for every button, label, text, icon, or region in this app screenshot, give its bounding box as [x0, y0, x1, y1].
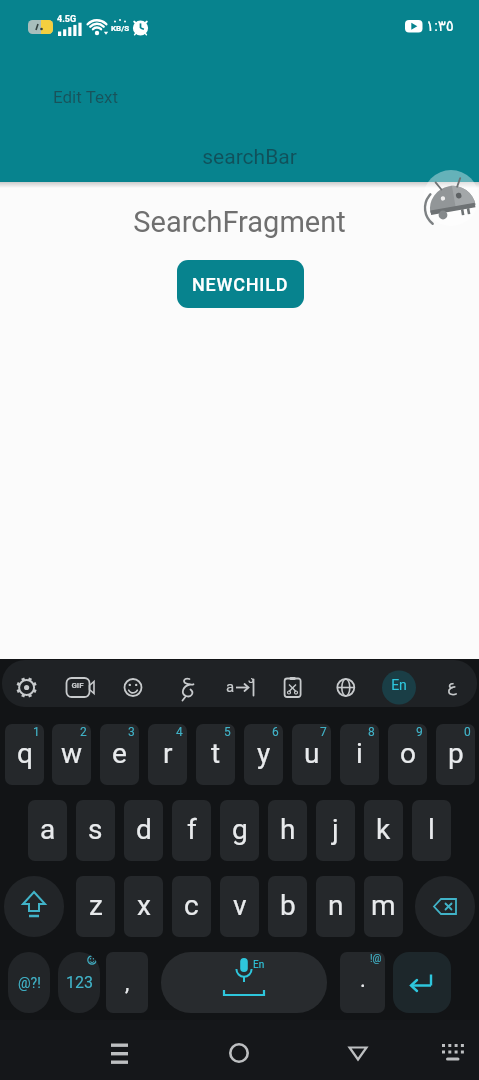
- button[interactable]: t: [196, 724, 235, 785]
- staticText: 4.5G: [57, 14, 77, 25]
- button[interactable]: b: [268, 876, 307, 937]
- staticText: 3: [128, 725, 135, 739]
- staticText: 123: [66, 973, 93, 992]
- button[interactable]: k: [364, 800, 403, 861]
- button[interactable]: .: [340, 952, 385, 1013]
- staticText: 1: [33, 725, 40, 739]
- button[interactable]: NEWCHILD: [177, 260, 304, 308]
- button[interactable]: [415, 876, 475, 937]
- staticText: searchBar: [10, 145, 479, 170]
- button[interactable]: [4, 876, 64, 937]
- button[interactable]: [412, 162, 479, 234]
- staticText: .: [360, 967, 366, 993]
- button[interactable]: [336, 1033, 380, 1073]
- button[interactable]: [326, 663, 366, 704]
- button[interactable]: [379, 663, 419, 704]
- staticText: 9: [416, 725, 423, 739]
- staticText: d: [136, 813, 152, 846]
- staticText: z: [89, 889, 103, 922]
- button[interactable]: m: [364, 876, 403, 937]
- button[interactable]: [436, 1035, 472, 1071]
- staticText: u: [304, 737, 320, 770]
- button[interactable]: z: [76, 876, 115, 937]
- staticText: p: [448, 737, 464, 770]
- button[interactable]: [217, 1033, 261, 1073]
- button[interactable]: [273, 663, 313, 704]
- staticText: v: [233, 889, 247, 922]
- staticText: 7: [320, 725, 327, 739]
- staticText: n: [328, 889, 344, 922]
- staticText: KB/S: [111, 24, 130, 33]
- staticText: f: [187, 813, 197, 846]
- button[interactable]: f: [172, 800, 211, 861]
- button[interactable]: n: [316, 876, 355, 937]
- staticText: a: [40, 813, 56, 846]
- staticText: w: [61, 737, 83, 770]
- button[interactable]: ,: [106, 952, 148, 1013]
- button[interactable]: i: [340, 724, 379, 785]
- staticText: i: [356, 737, 363, 770]
- button[interactable]: c: [172, 876, 211, 937]
- staticText: Edit Text: [53, 87, 119, 107]
- button[interactable]: q: [5, 724, 44, 785]
- staticText: x: [137, 889, 151, 922]
- staticText: !@: [370, 953, 382, 965]
- button[interactable]: v: [220, 876, 259, 937]
- staticText: h: [280, 813, 296, 846]
- staticText: GIF: [66, 681, 89, 690]
- button[interactable]: [166, 663, 206, 704]
- button[interactable]: j: [316, 800, 355, 861]
- staticText: 6: [272, 725, 279, 739]
- button[interactable]: [219, 663, 259, 704]
- staticText: 8: [368, 725, 375, 739]
- staticText: 0: [464, 725, 471, 739]
- staticText: SearchFragment: [0, 205, 479, 239]
- button[interactable]: [393, 952, 451, 1013]
- button[interactable]: En: [161, 952, 327, 1013]
- button[interactable]: y: [244, 724, 283, 785]
- staticText: a: [226, 678, 235, 696]
- staticText: @?!: [18, 975, 41, 991]
- button[interactable]: [98, 1033, 142, 1073]
- staticText: 4: [176, 725, 183, 739]
- staticText: y: [257, 737, 271, 770]
- button[interactable]: [113, 663, 153, 704]
- staticText: t: [211, 737, 221, 770]
- button[interactable]: [432, 663, 472, 704]
- button[interactable]: 123: [58, 952, 100, 1013]
- staticText: ١:٣٥: [422, 17, 458, 35]
- button[interactable]: h: [268, 800, 307, 861]
- staticText: c: [184, 889, 199, 922]
- button[interactable]: @?!: [8, 952, 50, 1013]
- staticText: o: [400, 737, 416, 770]
- staticText: En: [388, 677, 410, 693]
- staticText: q: [17, 737, 33, 770]
- staticText: 2: [80, 725, 87, 739]
- button[interactable]: d: [124, 800, 163, 861]
- button[interactable]: x: [124, 876, 163, 937]
- button[interactable]: p: [436, 724, 475, 785]
- staticText: 5: [224, 725, 231, 739]
- staticText: j: [332, 813, 339, 846]
- button[interactable]: [60, 663, 100, 704]
- button[interactable]: a: [28, 800, 67, 861]
- staticText: g: [232, 813, 248, 846]
- button[interactable]: l: [412, 800, 451, 861]
- staticText: ع: [441, 676, 463, 695]
- staticText: En: [253, 959, 265, 971]
- staticText: r: [163, 737, 173, 770]
- button[interactable]: s: [76, 800, 115, 861]
- button[interactable]: u: [292, 724, 331, 785]
- staticText: s: [88, 813, 103, 846]
- button[interactable]: g: [220, 800, 259, 861]
- button[interactable]: o: [388, 724, 427, 785]
- button[interactable]: w: [52, 724, 91, 785]
- staticText: m: [371, 889, 396, 922]
- button[interactable]: r: [148, 724, 187, 785]
- button[interactable]: [7, 663, 47, 704]
- button[interactable]: e: [100, 724, 139, 785]
- staticText: NEWCHILD: [192, 274, 289, 295]
- staticText: k: [376, 813, 391, 846]
- staticText: ,: [125, 970, 130, 996]
- staticText: b: [280, 889, 296, 922]
